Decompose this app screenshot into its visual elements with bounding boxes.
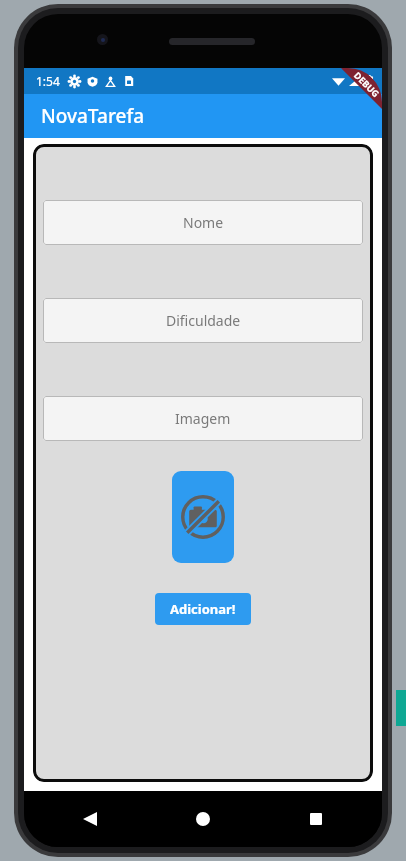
staticText: 1:54 xyxy=(36,73,60,89)
button[interactable]: Nome xyxy=(43,200,363,245)
button[interactable]: Back xyxy=(70,799,110,839)
staticText: DEBUG xyxy=(352,69,382,99)
staticText: Adicionar! xyxy=(170,600,236,618)
button[interactable]: Recent apps xyxy=(296,799,336,839)
button[interactable]: Imagem xyxy=(43,396,363,441)
button[interactable]: Adicionar! xyxy=(155,593,251,625)
staticText: Dificuldade xyxy=(166,311,241,330)
staticText: Nome xyxy=(183,213,224,232)
staticText: Imagem xyxy=(175,409,231,428)
button[interactable]: Home xyxy=(183,799,223,839)
staticText: NovaTarefa xyxy=(41,103,145,129)
button[interactable]: Dificuldade xyxy=(43,298,363,343)
button[interactable]: Tirar foto xyxy=(172,471,234,563)
